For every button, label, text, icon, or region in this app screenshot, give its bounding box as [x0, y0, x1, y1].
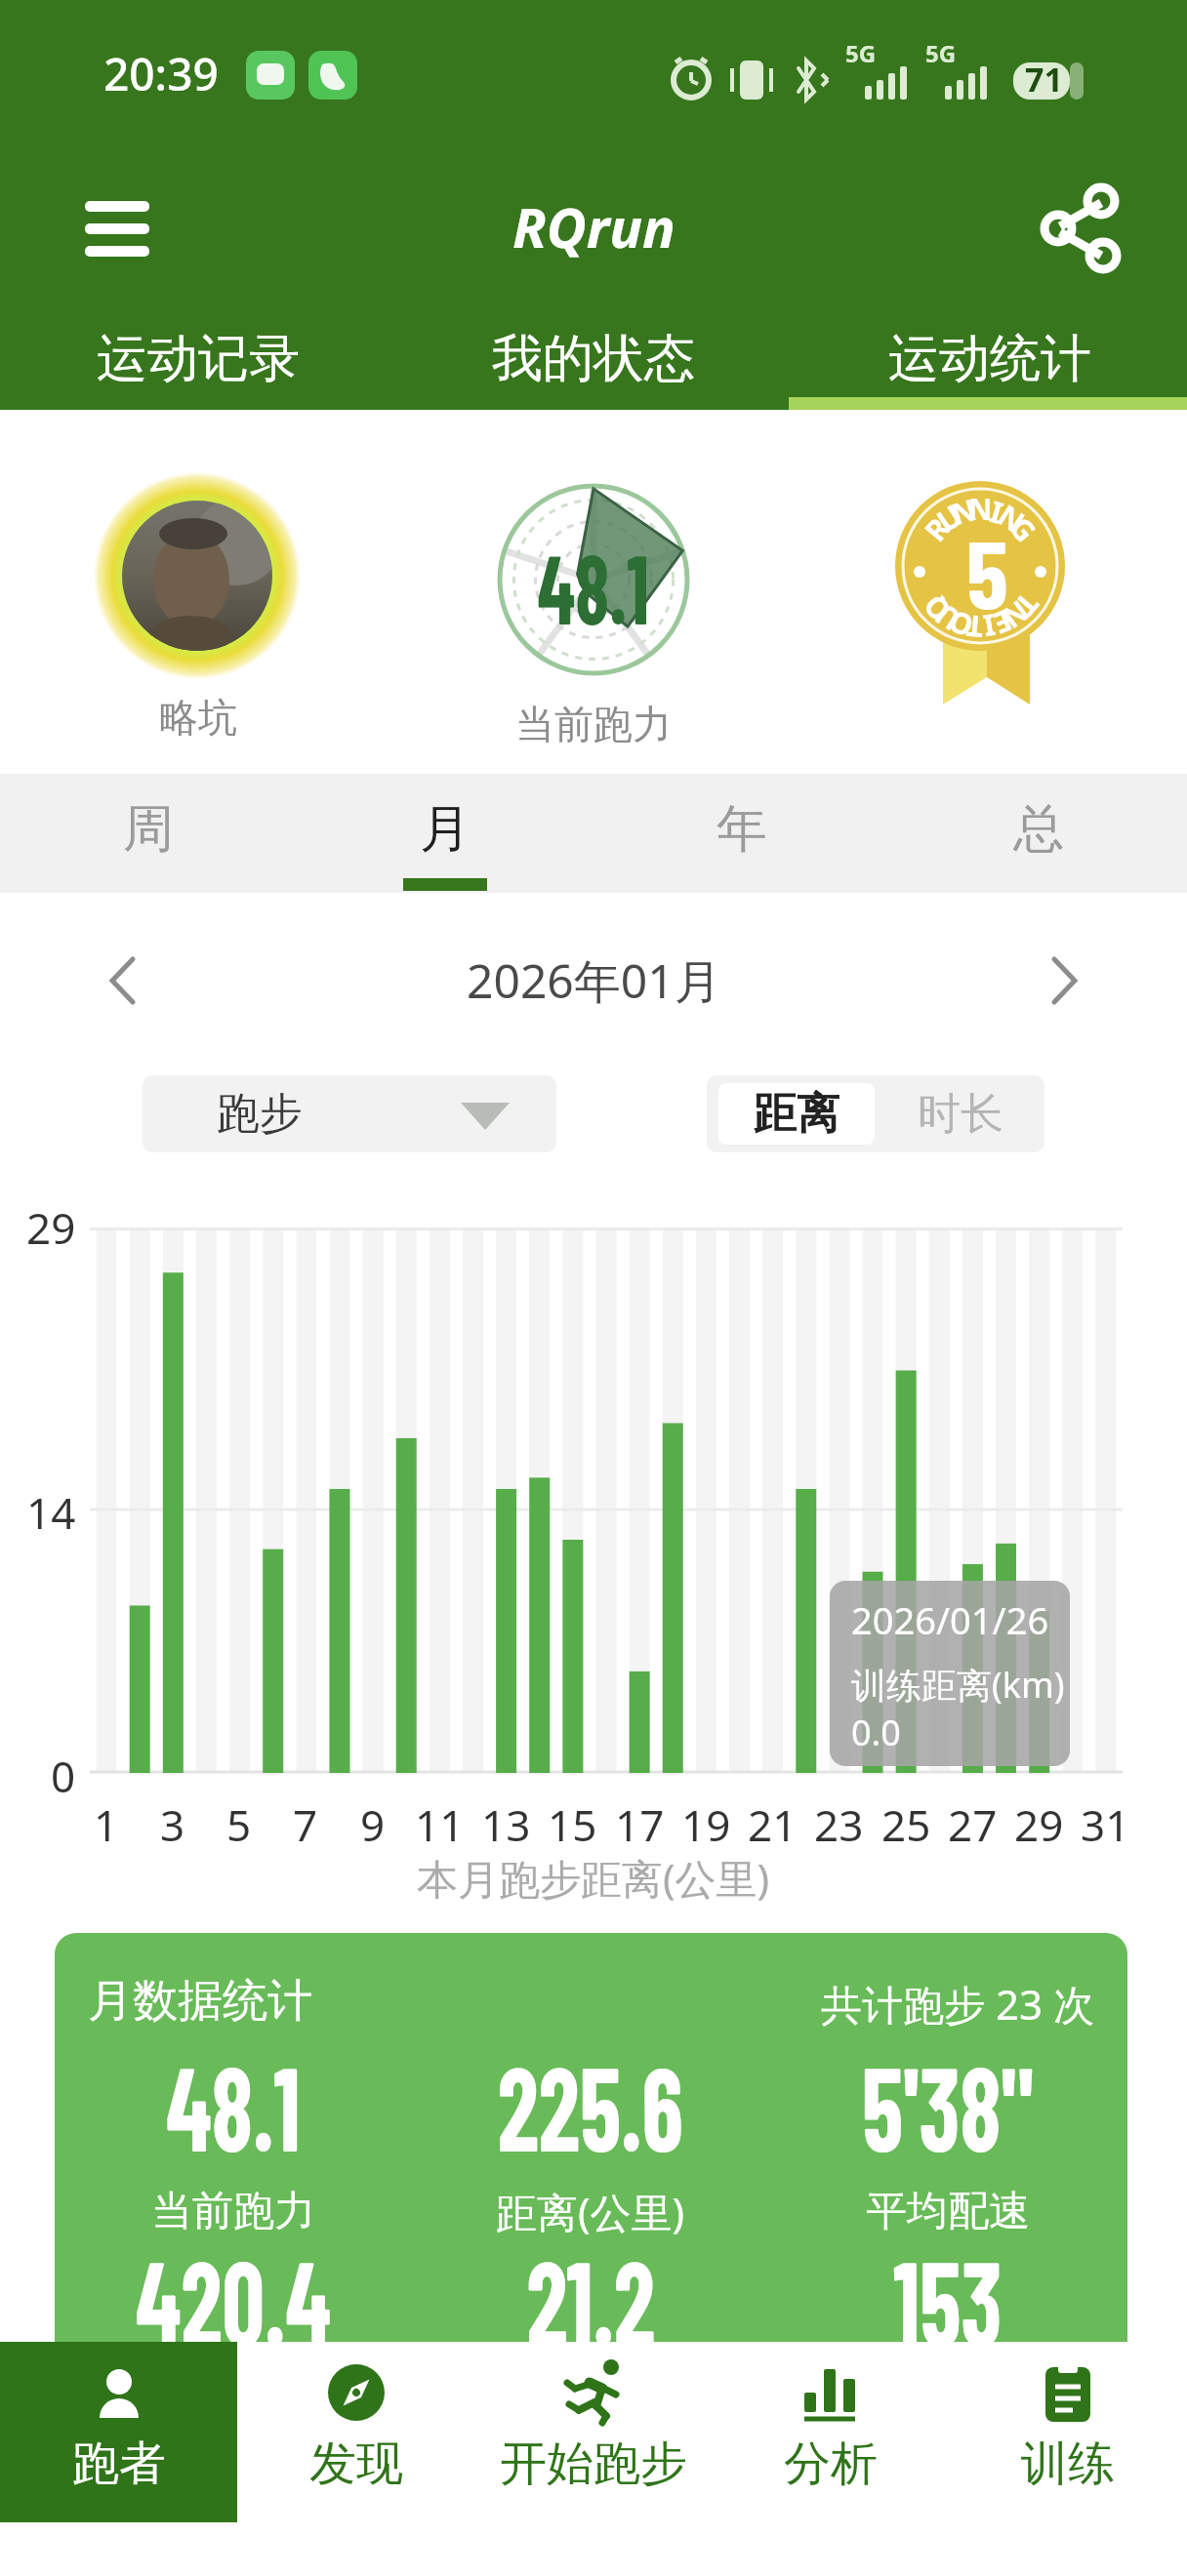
- staticText: 共计跑步 23 次: [821, 1976, 1094, 2030]
- staticText: 分析: [784, 2435, 878, 2493]
- staticText: Q: [914, 591, 954, 631]
- staticText: 5G: [925, 37, 957, 66]
- staticText: 11: [415, 1795, 465, 1848]
- button[interactable]: 我的状态: [395, 307, 792, 410]
- staticText: 3: [160, 1795, 185, 1848]
- staticText: 29: [1014, 1795, 1064, 1848]
- staticText: 运动记录: [97, 327, 300, 391]
- button[interactable]: [74, 190, 162, 268]
- staticText: 153: [893, 2229, 1003, 2351]
- staticText: 月: [420, 797, 471, 862]
- button[interactable]: [1027, 176, 1134, 283]
- staticText: O: [943, 608, 976, 647]
- button[interactable]: [1021, 937, 1109, 1025]
- staticText: 发现: [309, 2435, 403, 2493]
- button[interactable]: 总: [890, 785, 1187, 873]
- staticText: 48.1: [166, 2034, 300, 2156]
- staticText: 略坑: [159, 693, 237, 742]
- staticText: 总: [1013, 797, 1064, 862]
- staticText: 9: [360, 1795, 386, 1848]
- staticText: 5'38": [862, 2034, 1034, 2156]
- staticText: N: [998, 597, 1037, 639]
- staticText: 0.0: [851, 1709, 901, 1756]
- button[interactable]: 时长: [887, 1083, 1034, 1145]
- button[interactable]: 分析: [712, 2342, 949, 2522]
- staticText: N: [994, 495, 1033, 536]
- button[interactable]: 跑者: [0, 2342, 237, 2522]
- button[interactable]: 月: [297, 785, 593, 873]
- button[interactable]: 训练: [949, 2342, 1187, 2522]
- staticText: 7: [293, 1795, 318, 1848]
- staticText: N: [968, 489, 993, 522]
- staticText: 15: [548, 1795, 597, 1848]
- staticText: N: [946, 489, 979, 528]
- staticText: 跑者: [72, 2435, 166, 2493]
- staticText: 17: [615, 1795, 665, 1848]
- staticText: 19: [681, 1795, 731, 1848]
- button[interactable]: 发现: [237, 2342, 474, 2522]
- staticText: 1: [94, 1795, 119, 1848]
- staticText: 当前跑力: [515, 700, 672, 748]
- staticText: I: [987, 491, 1008, 526]
- staticText: 20:39: [103, 43, 219, 100]
- staticText: 本月跑步距离(公里): [417, 1850, 770, 1906]
- staticText: RQrun: [512, 189, 675, 263]
- staticText: 29: [26, 1198, 76, 1249]
- staticText: 25: [881, 1795, 931, 1848]
- staticText: 当前跑力: [151, 2186, 315, 2237]
- button[interactable]: [94, 472, 301, 679]
- staticText: 平均配速: [866, 2186, 1030, 2237]
- staticText: 训练: [1021, 2435, 1115, 2493]
- staticText: 年: [716, 797, 767, 862]
- staticText: 13: [481, 1795, 531, 1848]
- staticText: 2026/01/26: [851, 1594, 1049, 1645]
- staticText: U: [929, 495, 966, 535]
- staticText: 420.4: [136, 2229, 331, 2351]
- staticText: 运动统计: [888, 327, 1091, 391]
- button[interactable]: 跑步: [143, 1075, 556, 1152]
- staticText: 5: [966, 514, 1008, 627]
- staticText: G: [1006, 508, 1046, 546]
- button[interactable]: 周: [0, 785, 297, 873]
- staticText: I: [982, 612, 998, 647]
- staticText: 14: [26, 1483, 76, 1534]
- staticText: 距离(公里): [496, 2184, 685, 2239]
- button[interactable]: 距离: [718, 1083, 875, 1145]
- staticText: 我的状态: [492, 327, 695, 391]
- staticText: 跑步: [217, 1087, 303, 1141]
- staticText: 周: [123, 797, 174, 862]
- staticText: 开始跑步: [500, 2435, 687, 2493]
- button[interactable]: 2026年01月: [293, 937, 894, 1025]
- staticText: 5G: [845, 37, 877, 66]
- staticText: 5: [226, 1795, 252, 1848]
- staticText: 225.6: [498, 2034, 684, 2156]
- staticText: T: [1011, 590, 1048, 624]
- staticText: 71: [1025, 57, 1063, 100]
- staticText: 21.2: [527, 2229, 655, 2351]
- staticText: 2026年01月: [467, 948, 721, 1013]
- button[interactable]: 年: [593, 785, 890, 873]
- staticText: 距离: [754, 1087, 839, 1141]
- staticText: U: [927, 600, 964, 640]
- staticText: R: [915, 509, 953, 545]
- button[interactable]: 开始跑步: [474, 2342, 712, 2522]
- button[interactable]: [78, 937, 166, 1025]
- staticText: 23: [814, 1795, 864, 1848]
- staticText: 时长: [918, 1087, 1003, 1141]
- staticText: 0: [51, 1747, 76, 1797]
- staticText: E: [990, 607, 1018, 644]
- button[interactable]: 运动记录: [0, 307, 395, 410]
- staticText: 27: [948, 1795, 998, 1848]
- staticText: 月数据统计: [88, 1973, 312, 2030]
- button[interactable]: 运动统计: [792, 307, 1187, 410]
- staticText: 48.1: [537, 527, 650, 634]
- staticText: 21: [748, 1795, 798, 1848]
- staticText: 31: [1081, 1795, 1130, 1848]
- staticText: T: [964, 613, 984, 648]
- staticText: 训练距离(km): [851, 1661, 1065, 1709]
